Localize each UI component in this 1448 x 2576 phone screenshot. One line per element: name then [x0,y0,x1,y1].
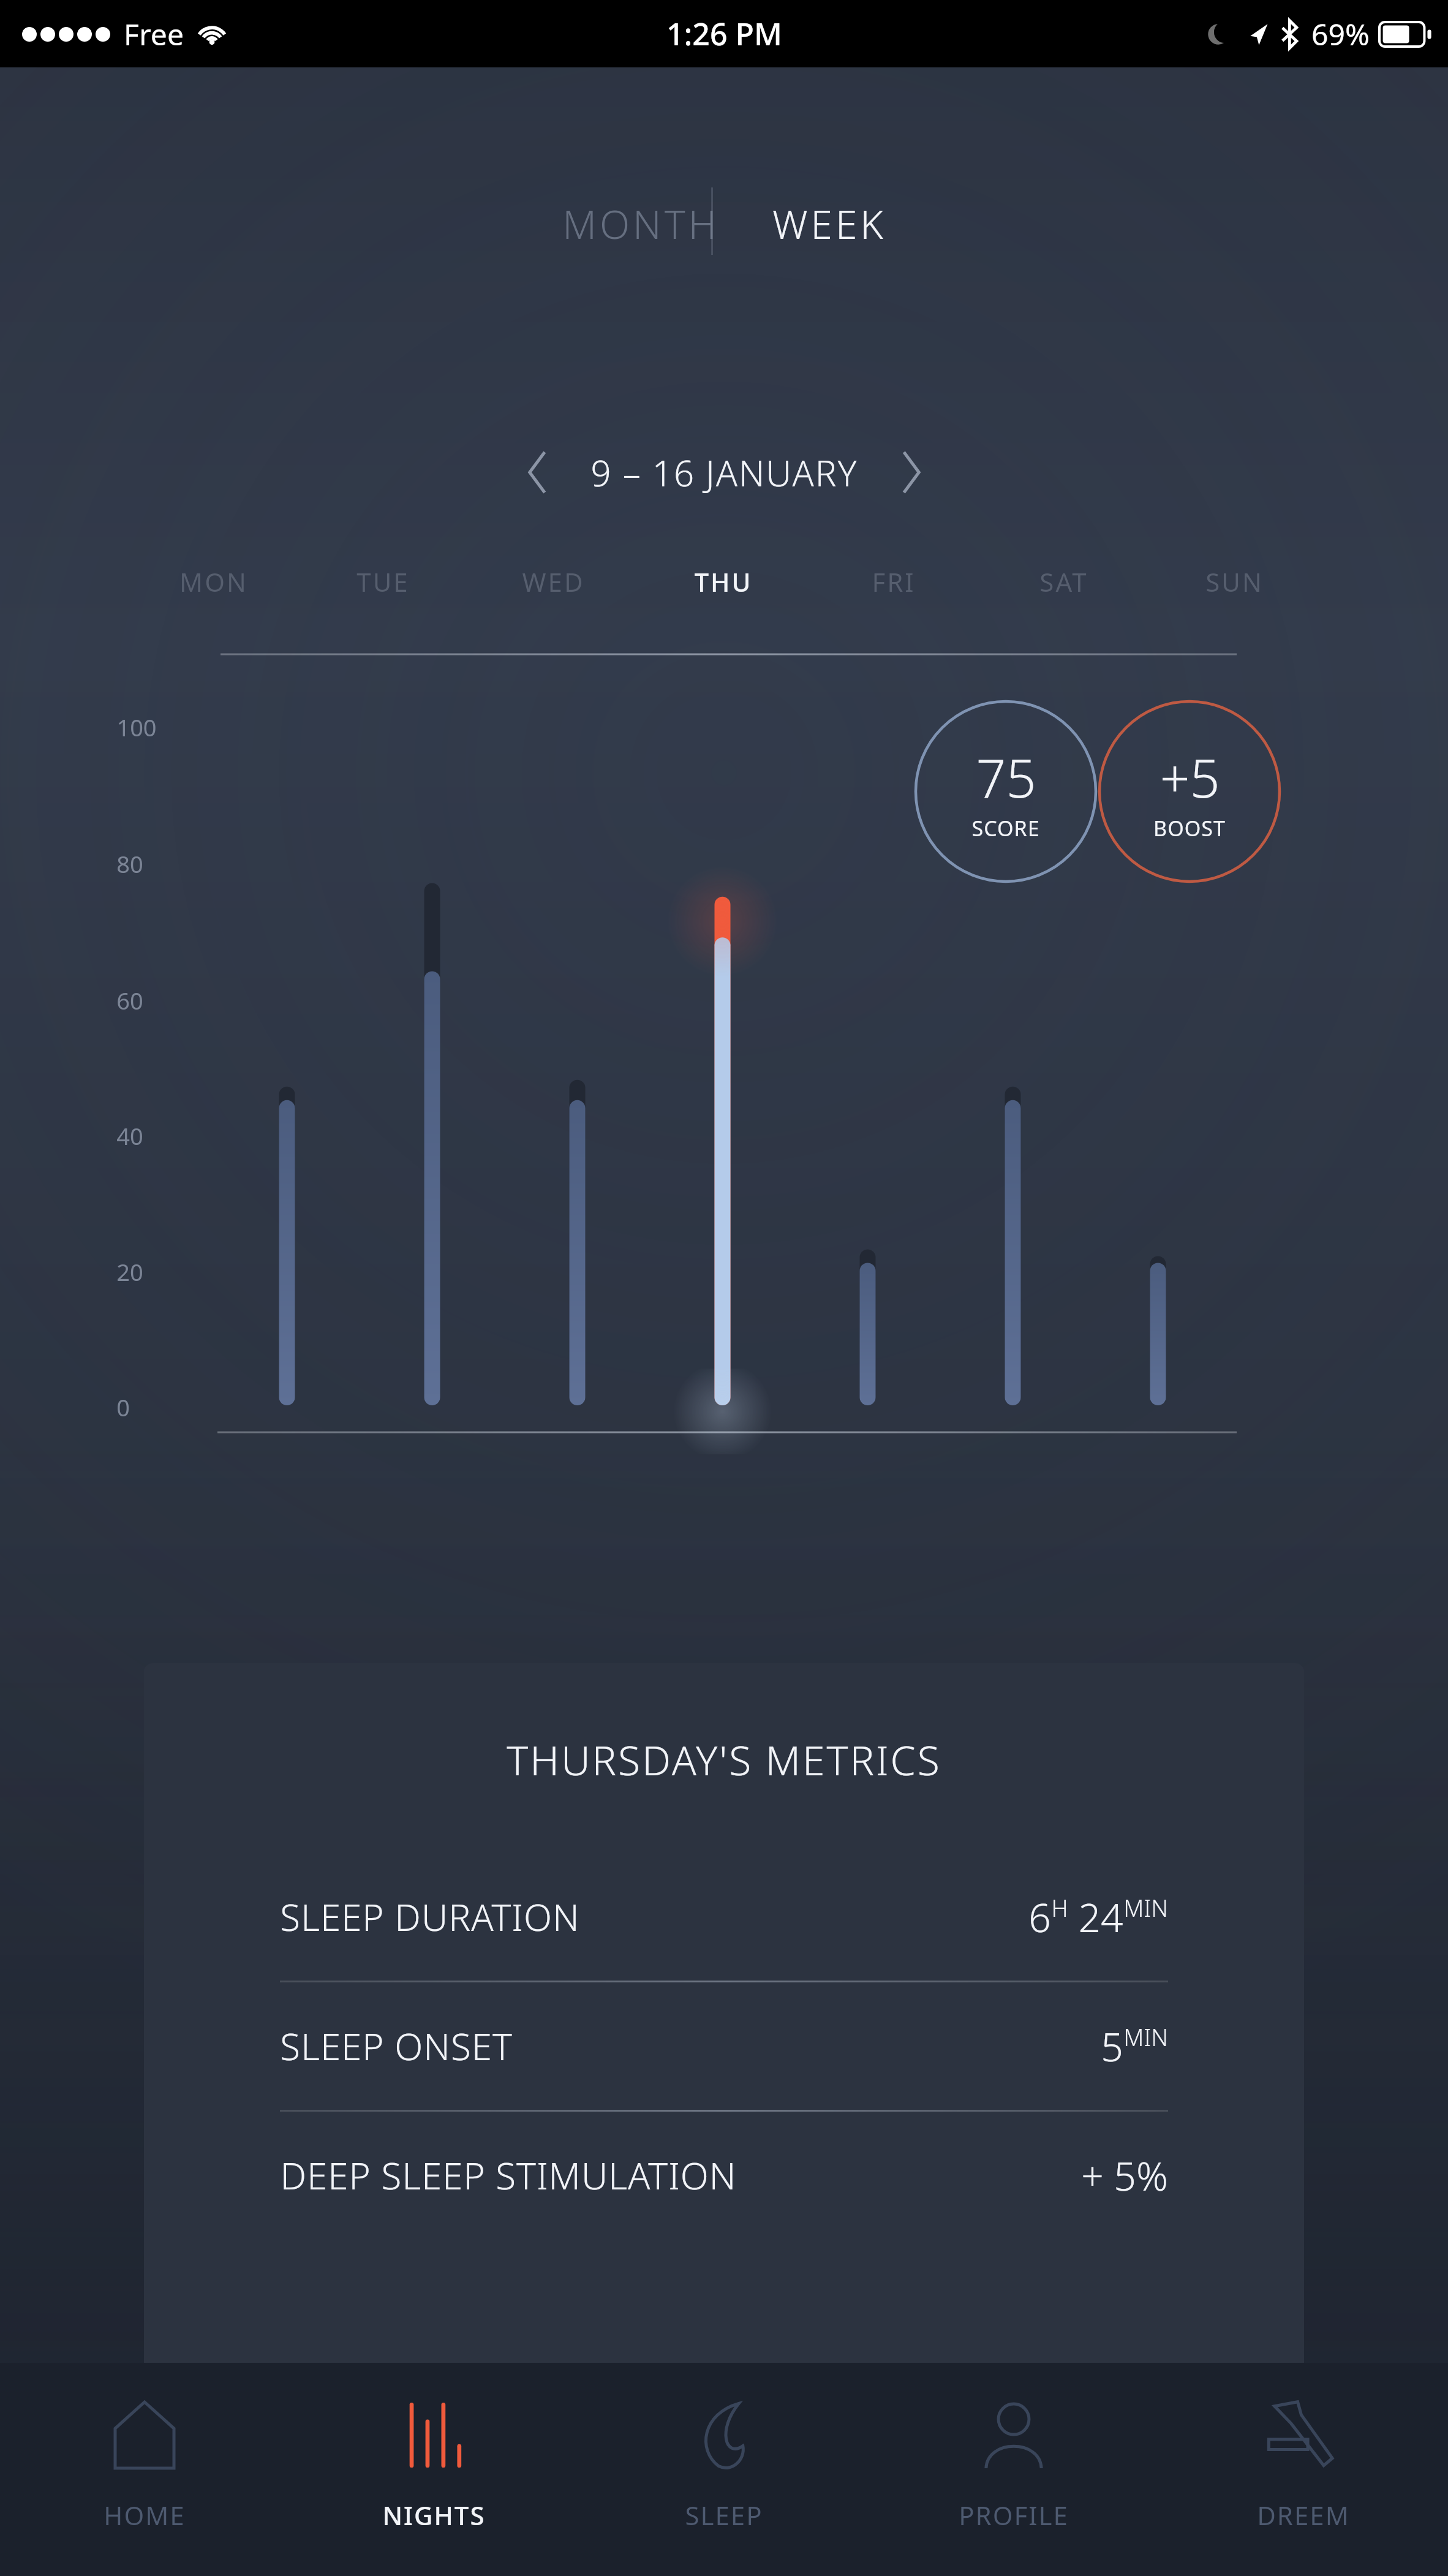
staticText: DREEM [1257,2498,1350,2533]
button[interactable]: MON [129,554,298,609]
staticText: THU [694,564,753,599]
staticText: BOOST [1153,814,1226,842]
button[interactable]: DEEP SLEEP STIMULATION [144,2112,1304,2239]
button[interactable]: WED [468,554,638,609]
button[interactable]: +5 [1098,700,1281,883]
staticText: FRI [872,564,916,599]
button[interactable]: SLEEP DURATION [144,1853,1304,1981]
button[interactable]: 75 [914,700,1098,883]
staticText: 24 [1078,1890,1123,1944]
other: Home [115,2402,174,2468]
staticText: 100 [116,711,157,743]
button[interactable]: SUN [1149,554,1319,609]
staticText: MONTH [562,197,720,245]
button[interactable]: WEEK [756,187,902,255]
button[interactable]: Previous week [503,439,571,506]
staticText: 1:26 PM [666,13,782,55]
button[interactable]: MONTH [546,187,736,255]
staticText: THURSDAY'S METRICS [507,1732,941,1787]
staticText: H [1051,1892,1068,1924]
staticText: 5 [1101,2020,1123,2073]
other: Profile [984,2402,1043,2468]
button[interactable]: Next week [878,439,945,506]
other: Dreem headband [1267,2399,1340,2471]
staticText: 6 [1028,1890,1051,1944]
button[interactable]: 9 – 16 JANUARY [584,440,864,505]
staticText: 60 [116,984,143,1016]
staticText: MIN [1123,1892,1168,1924]
button[interactable]: TUE [298,554,468,609]
staticText: NIGHTS [382,2498,486,2533]
staticText: WED [522,564,585,599]
button[interactable]: Home [0,2363,289,2576]
staticText: SLEEP ONSET [280,2021,513,2071]
staticText: + 5% [1081,2149,1168,2202]
staticText: WEEK [772,197,886,245]
staticText: SAT [1039,564,1088,599]
other: Sleep [690,2401,758,2469]
button[interactable]: Dreem headband [1158,2363,1448,2576]
staticText: MIN [1123,2021,1168,2053]
button[interactable]: Nights [289,2363,579,2576]
button[interactable]: Profile [869,2363,1158,2576]
staticText: 20 [116,1256,143,1288]
staticText: PROFILE [959,2498,1069,2533]
button[interactable]: FRI [809,554,979,609]
staticText: 80 [116,848,143,880]
staticText: SLEEP DURATION [280,1892,580,1942]
staticText: +5 [1160,741,1220,813]
staticText: Free [124,14,184,54]
button[interactable]: Sleep [579,2363,869,2576]
staticText: DEEP SLEEP STIMULATION [280,2150,737,2200]
staticText: 0 [116,1391,130,1423]
staticText: 40 [116,1120,143,1152]
staticText: HOME [104,2498,186,2533]
staticText: SLEEP [685,2498,763,2533]
other: Nights [405,2403,464,2468]
staticText: 75 [976,741,1036,813]
staticText: TUE [356,564,410,599]
button[interactable]: SAT [979,554,1149,609]
staticText: SCORE [971,814,1040,842]
staticText: 69% [1311,14,1370,54]
staticText: MON [179,564,248,599]
staticText: 9 – 16 JANUARY [590,448,858,497]
staticText: SUN [1205,564,1264,599]
button[interactable]: SLEEP ONSET [144,1982,1304,2110]
button[interactable]: THU [638,554,809,609]
